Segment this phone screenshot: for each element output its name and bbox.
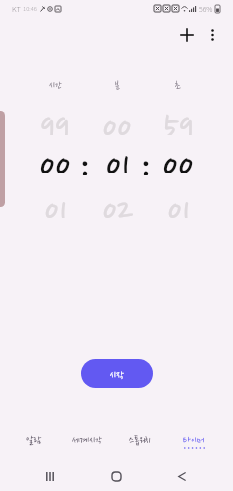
staticText: 56% bbox=[199, 4, 213, 14]
button[interactable]: 01 bbox=[148, 192, 208, 218]
button[interactable]: 59 bbox=[148, 109, 208, 135]
staticText: 초 bbox=[175, 80, 181, 91]
button[interactable]: 초 bbox=[148, 72, 208, 98]
button[interactable]: 시작 bbox=[81, 359, 153, 388]
staticText: 00 bbox=[162, 147, 194, 173]
button[interactable]: 00 bbox=[25, 147, 85, 173]
staticText: 10:46 bbox=[23, 4, 37, 13]
button[interactable]: 알람 bbox=[7, 432, 61, 454]
staticText: 세계시각 bbox=[72, 435, 103, 446]
staticText: 00 bbox=[102, 109, 132, 135]
staticText: 00 bbox=[39, 147, 71, 173]
button[interactable]: 세계시각 bbox=[61, 432, 114, 454]
staticText: 01 bbox=[105, 147, 130, 173]
staticText: 타이머 bbox=[183, 435, 205, 446]
button[interactable]: 분 bbox=[87, 72, 147, 98]
button[interactable]: 01 bbox=[25, 192, 85, 218]
button[interactable]: 99 bbox=[25, 109, 85, 135]
button[interactable]: Back bbox=[168, 462, 196, 491]
staticText: 분 bbox=[115, 80, 120, 91]
button[interactable]: More options bbox=[197, 20, 227, 50]
staticText: 알람 bbox=[26, 435, 42, 446]
staticText: 99 bbox=[40, 109, 70, 135]
button[interactable]: Home bbox=[102, 462, 130, 491]
staticText: : bbox=[78, 149, 90, 175]
staticText: 시작 bbox=[110, 370, 125, 381]
staticText: 59 bbox=[163, 109, 194, 135]
button[interactable]: Add timer preset bbox=[172, 20, 202, 50]
button[interactable]: 타이머 bbox=[167, 432, 220, 454]
button[interactable]: 00 bbox=[148, 147, 208, 173]
staticText: 시간 bbox=[49, 80, 62, 91]
staticText: 02 bbox=[102, 192, 133, 218]
button[interactable]: 00 bbox=[87, 109, 147, 135]
button[interactable]: 02 bbox=[87, 192, 147, 218]
staticText: KT bbox=[12, 3, 21, 14]
button[interactable]: 01 bbox=[87, 147, 147, 173]
staticText: 01 bbox=[167, 192, 190, 218]
button[interactable]: 스톱워치 bbox=[114, 432, 167, 454]
staticText: : bbox=[139, 149, 151, 175]
button[interactable]: 시간 bbox=[25, 72, 85, 98]
button[interactable]: Recents bbox=[36, 462, 64, 491]
staticText: 스톱워치 bbox=[129, 435, 152, 446]
staticText: 01 bbox=[44, 192, 67, 218]
